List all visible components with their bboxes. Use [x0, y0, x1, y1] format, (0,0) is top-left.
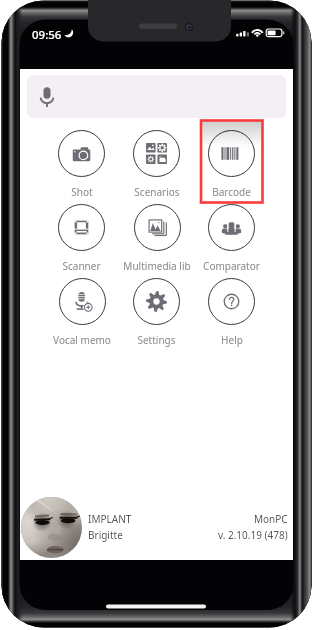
staticText: MonPC: [254, 512, 288, 526]
staticText: Vocal memo: [53, 333, 111, 347]
staticText: Multimedia lib: [123, 259, 191, 273]
staticText: 09:56: [32, 27, 62, 43]
staticText: Brigitte: [88, 528, 123, 542]
button[interactable]: Scenarios: [133, 130, 180, 177]
button[interactable]: Vocal memo: [59, 278, 106, 325]
staticText: Scanner: [62, 259, 101, 273]
staticText: v. 2.10.19 (478): [218, 528, 288, 542]
staticText: Comparator: [203, 259, 260, 273]
button[interactable]: Multimedia lib: [134, 204, 181, 251]
staticText: Scenarios: [134, 185, 180, 199]
button[interactable]: Help: [208, 278, 255, 325]
button[interactable]: Shot: [58, 130, 105, 177]
staticText: Help: [221, 333, 243, 347]
staticText: IMPLANT: [88, 512, 132, 526]
button[interactable]: Voice search: [27, 75, 286, 118]
button[interactable]: Barcode: [208, 130, 255, 177]
staticText: Shot: [71, 185, 93, 199]
staticText: Barcode: [212, 185, 251, 199]
button[interactable]: IMPLANT: [20, 494, 293, 560]
button[interactable]: Scanner: [58, 204, 105, 251]
button[interactable]: Settings: [133, 278, 180, 325]
staticText: Settings: [137, 333, 176, 347]
button[interactable]: Comparator: [208, 204, 255, 251]
